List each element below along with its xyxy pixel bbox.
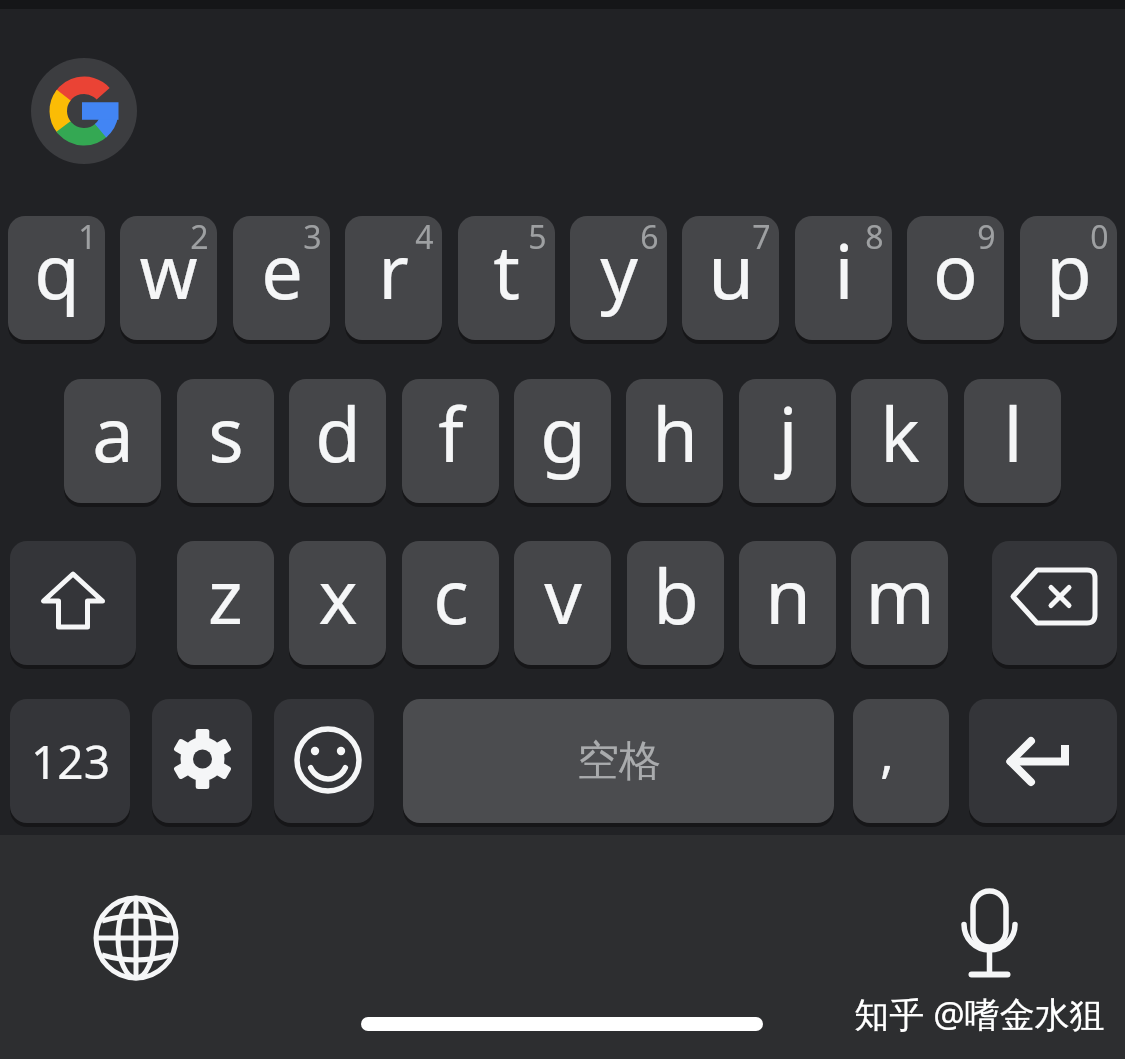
staticText: 7	[752, 216, 771, 259]
button[interactable]: u	[682, 216, 779, 340]
button[interactable]	[992, 541, 1117, 665]
staticText: x	[318, 545, 358, 646]
button[interactable]: k	[851, 379, 948, 503]
staticText: c	[433, 545, 469, 646]
staticText: 2	[190, 216, 209, 259]
staticText: h	[652, 383, 698, 484]
button[interactable]	[969, 699, 1117, 823]
button[interactable]: i	[795, 216, 892, 340]
staticText: f	[438, 383, 464, 484]
button[interactable]: x	[289, 541, 386, 665]
staticText: 3	[303, 216, 322, 259]
staticText: i	[834, 220, 854, 321]
staticText: 1	[78, 216, 97, 259]
button[interactable]	[274, 699, 374, 823]
button[interactable]: d	[289, 379, 386, 503]
staticText: j	[778, 383, 798, 484]
staticText: 空格	[577, 735, 661, 788]
button[interactable]: c	[402, 541, 499, 665]
button[interactable]: b	[627, 541, 724, 665]
button[interactable]: r	[345, 216, 442, 340]
button[interactable]: v	[514, 541, 611, 665]
button[interactable]: f	[402, 379, 499, 503]
button[interactable]: q	[8, 216, 105, 340]
button[interactable]: e	[233, 216, 330, 340]
staticText: l	[1003, 383, 1023, 484]
button[interactable]: h	[626, 379, 723, 503]
button[interactable]	[10, 541, 136, 665]
staticText: g	[540, 383, 586, 484]
staticText: k	[880, 383, 920, 484]
staticText: e	[261, 220, 303, 321]
staticText: d	[315, 383, 361, 484]
button[interactable]: t	[458, 216, 555, 340]
staticText: m	[865, 545, 935, 646]
button[interactable]: y	[570, 216, 667, 340]
staticText: z	[208, 545, 243, 646]
staticText: v	[544, 545, 582, 646]
button[interactable]: a	[64, 379, 161, 503]
staticText: 5	[528, 216, 547, 259]
staticText: 0	[1090, 216, 1109, 259]
staticText: w	[139, 220, 198, 321]
staticText: n	[765, 545, 811, 646]
button[interactable]: g	[514, 379, 611, 503]
button[interactable]: n	[739, 541, 836, 665]
staticText: 4	[415, 216, 434, 259]
button[interactable]: o	[907, 216, 1004, 340]
button[interactable]: 123	[10, 699, 130, 823]
staticText: 8	[865, 216, 884, 259]
button[interactable]: z	[177, 541, 274, 665]
staticText: 123	[31, 730, 110, 793]
staticText: 9	[977, 216, 996, 259]
staticText: 知乎 @嗜金水狙	[854, 990, 1105, 1038]
staticText: q	[34, 220, 80, 321]
staticText: a	[92, 383, 134, 484]
staticText: r	[378, 220, 409, 321]
button[interactable]: ,	[853, 699, 949, 823]
button[interactable]: s	[177, 379, 274, 503]
staticText: o	[933, 220, 978, 321]
button[interactable]: w	[120, 216, 217, 340]
button[interactable]: m	[851, 541, 948, 665]
button[interactable]: l	[964, 379, 1061, 503]
button[interactable]: p	[1020, 216, 1117, 340]
staticText: ,	[880, 716, 894, 787]
button[interactable]: j	[739, 379, 836, 503]
staticText: y	[600, 220, 638, 321]
staticText: b	[653, 545, 699, 646]
button[interactable]	[152, 699, 252, 823]
staticText: u	[708, 220, 754, 321]
staticText: s	[208, 383, 244, 484]
staticText: t	[493, 220, 520, 321]
staticText: 6	[640, 216, 659, 259]
button[interactable]: 空格	[403, 699, 834, 823]
staticText: p	[1046, 220, 1092, 321]
